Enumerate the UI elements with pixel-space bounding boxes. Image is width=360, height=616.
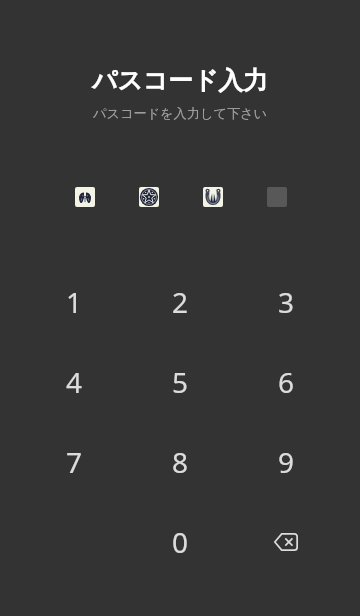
button[interactable]: 9	[233, 422, 339, 502]
staticText: パスコード入力	[0, 65, 360, 96]
button[interactable]: Entered passcode digit	[139, 187, 159, 207]
button[interactable]: Entered passcode digit	[75, 187, 95, 207]
button[interactable]: 8	[127, 422, 233, 502]
button[interactable]: 6	[233, 342, 339, 422]
staticText: 4	[66, 363, 83, 401]
staticText: 9	[278, 443, 295, 481]
button[interactable]: 4	[21, 342, 127, 422]
button[interactable]: Delete last digit	[233, 502, 339, 582]
staticText: パスコードを入力して下さい	[0, 105, 360, 122]
button[interactable]: 3	[233, 262, 339, 342]
staticText: 5	[172, 363, 189, 401]
staticText: 0	[172, 523, 189, 561]
staticText: 6	[278, 363, 295, 401]
staticText: 2	[172, 283, 189, 321]
button[interactable]: 5	[127, 342, 233, 422]
staticText: 3	[278, 283, 295, 321]
staticText: 8	[172, 443, 189, 481]
staticText: 1	[66, 283, 83, 321]
button[interactable]: 2	[127, 262, 233, 342]
staticText: 7	[66, 443, 83, 481]
button[interactable]: 0	[127, 502, 233, 582]
button[interactable]: 1	[21, 262, 127, 342]
button[interactable]: 7	[21, 422, 127, 502]
button[interactable]: Entered passcode digit	[203, 187, 223, 207]
